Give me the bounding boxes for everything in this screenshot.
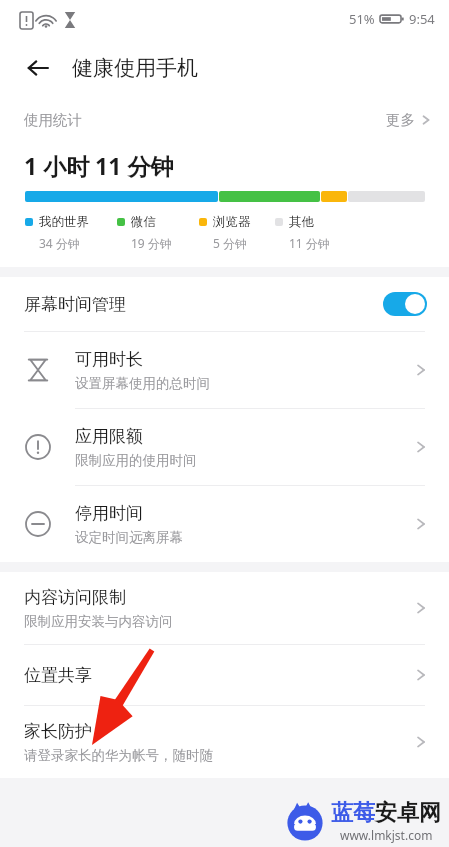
staticText: 51% — [349, 10, 375, 28]
staticText: 我的世界 — [39, 214, 89, 230]
staticText: www.lmkjst.com — [340, 827, 433, 843]
staticText: 设置屏幕使用的总时间 — [75, 375, 210, 392]
button[interactable]: 内容访问限制 — [0, 572, 449, 644]
staticText: 限制应用的使用时间 — [75, 452, 197, 469]
staticText: 设定时间远离屏幕 — [75, 529, 183, 546]
staticText: 19 分钟 — [131, 235, 172, 251]
button[interactable]: 停用时间 — [0, 486, 449, 562]
button[interactable]: 使用统计 — [0, 98, 449, 142]
staticText: 健康使用手机 — [72, 55, 198, 81]
button[interactable]: 家长防护 — [0, 706, 449, 778]
staticText: 位置共享 — [24, 665, 92, 686]
staticText: 其他 — [289, 214, 314, 230]
staticText: 9:54 — [409, 10, 435, 28]
button[interactable]: 可用时长 — [0, 332, 449, 408]
staticText: 屏幕时间管理 — [24, 294, 126, 315]
button[interactable]: 位置共享 — [0, 645, 449, 705]
staticText: 应用限额 — [75, 426, 143, 447]
button[interactable]: 屏幕时间管理开关 — [383, 292, 427, 316]
staticText: 可用时长 — [75, 349, 143, 370]
staticText: 5 分钟 — [213, 235, 247, 251]
button[interactable]: 屏幕时间管理 — [0, 277, 449, 331]
staticText: 更多 — [386, 111, 415, 129]
staticText: 停用时间 — [75, 503, 143, 524]
button[interactable]: 应用限额 — [0, 409, 449, 485]
staticText: 请登录家长的华为帐号，随时随 — [24, 747, 213, 764]
staticText: 浏览器 — [213, 214, 251, 230]
staticText: 内容访问限制 — [24, 587, 126, 608]
staticText: 蓝莓 — [331, 799, 375, 827]
staticText: 使用统计 — [24, 111, 82, 129]
staticText: 家长防护 — [24, 721, 92, 742]
staticText: 34 分钟 — [39, 235, 80, 251]
staticText: 限制应用安装与内容访问 — [24, 613, 173, 630]
staticText: 11 分钟 — [289, 235, 330, 251]
staticText: 1 小时 11 分钟 — [24, 150, 174, 181]
button[interactable]: Back — [16, 46, 60, 90]
staticText: 微信 — [131, 214, 156, 230]
staticText: 安卓网 — [375, 799, 441, 827]
